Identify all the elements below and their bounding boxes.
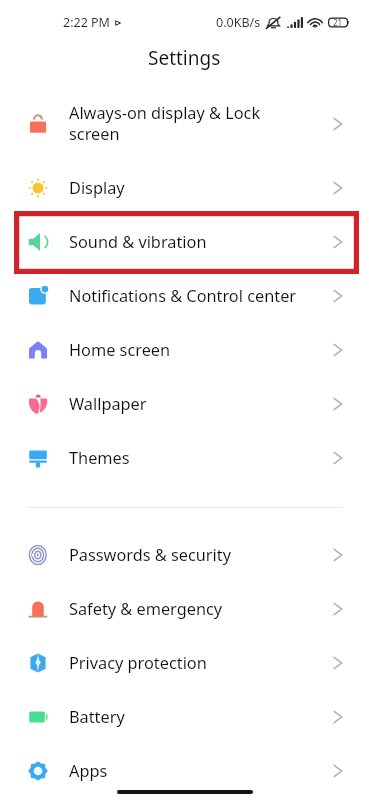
button[interactable]: Home screen — [0, 323, 369, 377]
other: Open — [331, 289, 345, 303]
staticText: Battery — [69, 706, 125, 728]
button[interactable]: Always-on display & Lock screen — [0, 86, 369, 161]
staticText: Home screen — [69, 339, 171, 361]
staticText: Passwords & security — [69, 544, 231, 566]
staticText: Sound & vibration — [69, 231, 207, 253]
other: Open — [331, 397, 345, 411]
other: Open — [331, 117, 345, 131]
button[interactable]: Safety & emergency — [0, 582, 369, 636]
staticText: Display — [69, 177, 125, 199]
button[interactable]: Passwords & security — [0, 528, 369, 582]
other: Open — [331, 181, 345, 195]
staticText: Settings — [148, 45, 221, 71]
staticText: Wallpaper — [69, 393, 147, 415]
button[interactable]: Wallpaper — [0, 377, 369, 431]
button[interactable]: Display — [0, 161, 369, 215]
button[interactable]: Themes — [0, 431, 369, 485]
other: Open — [331, 602, 345, 616]
other: Open — [331, 235, 345, 249]
staticText: Safety & emergency — [69, 598, 223, 620]
other: Open — [331, 451, 345, 465]
button[interactable]: Notifications & Control center — [0, 269, 369, 323]
button[interactable]: Privacy protection — [0, 636, 369, 690]
button[interactable]: Battery — [0, 690, 369, 744]
staticText: 21 — [333, 17, 343, 28]
other: Open — [331, 548, 345, 562]
staticText: Notifications & Control center — [69, 285, 297, 307]
staticText: Privacy protection — [69, 652, 207, 674]
staticText: 0.0KB/s — [216, 14, 261, 31]
other: Open — [331, 343, 345, 357]
other: Open — [331, 710, 345, 724]
button[interactable]: Sound & vibration — [0, 215, 369, 269]
other: Open — [331, 656, 345, 670]
staticText: Apps — [69, 760, 108, 782]
other: Open — [331, 764, 345, 778]
staticText: 2:22 PM — [63, 14, 110, 31]
staticText: Always-on display & Lock screen — [69, 102, 261, 145]
button[interactable]: Apps — [0, 744, 369, 798]
staticText: Themes — [69, 447, 130, 469]
